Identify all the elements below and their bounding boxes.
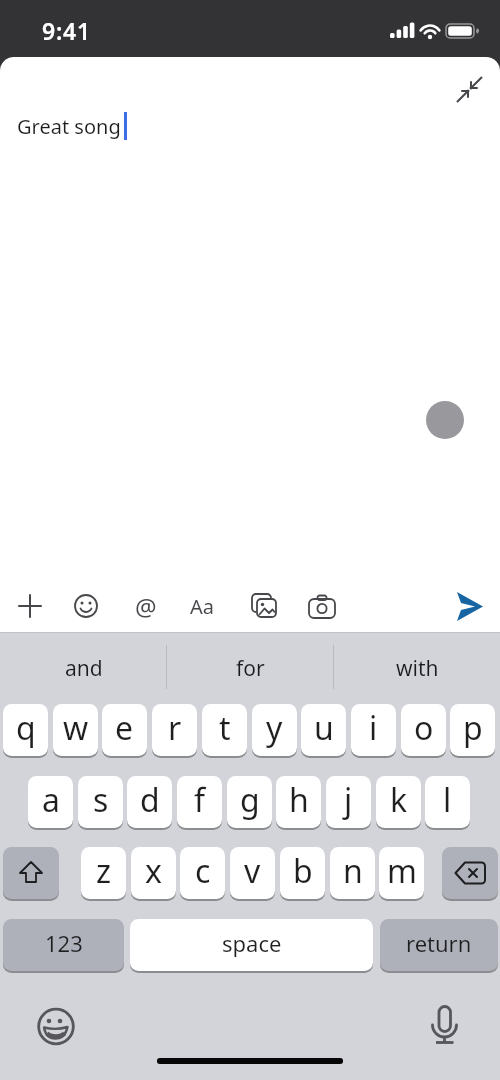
button[interactable]: and — [24, 654, 144, 680]
button[interactable]: k — [376, 776, 421, 830]
button[interactable]: a — [28, 776, 73, 830]
staticText: e — [115, 706, 134, 750]
button[interactable]: q — [3, 704, 48, 758]
staticText: u — [314, 706, 334, 750]
button[interactable] — [428, 1002, 464, 1047]
button[interactable]: l — [425, 776, 470, 830]
staticText: k — [390, 778, 408, 822]
staticText: q — [16, 706, 36, 750]
button[interactable]: e — [102, 704, 147, 758]
staticText: 123 — [45, 928, 83, 958]
button[interactable]: i — [351, 704, 396, 758]
button[interactable]: g — [227, 776, 272, 830]
staticText: with — [396, 654, 439, 680]
button[interactable] — [36, 1006, 77, 1047]
button[interactable]: c — [180, 847, 225, 901]
staticText: j — [344, 778, 353, 822]
button[interactable]: x — [131, 847, 176, 901]
button[interactable] — [249, 591, 279, 621]
staticText: a — [42, 778, 60, 822]
staticText: t — [219, 706, 231, 750]
button[interactable]: w — [53, 704, 98, 758]
button[interactable]: return — [380, 919, 498, 973]
staticText: l — [443, 778, 452, 822]
button[interactable]: d — [127, 776, 172, 830]
staticText: v — [244, 849, 261, 893]
button[interactable]: v — [230, 847, 275, 901]
button[interactable]: for — [190, 654, 310, 680]
button[interactable]: m — [379, 847, 424, 901]
staticText: x — [145, 849, 162, 893]
staticText: for — [236, 654, 265, 680]
button[interactable]: @ — [131, 590, 161, 622]
button[interactable]: n — [330, 847, 375, 901]
button[interactable] — [72, 592, 100, 620]
staticText: s — [93, 778, 109, 822]
button[interactable] — [3, 847, 59, 901]
button[interactable]: o — [401, 704, 446, 758]
staticText: m — [387, 849, 417, 893]
button[interactable]: Aa — [184, 590, 220, 622]
button[interactable]: s — [78, 776, 123, 830]
staticText: r — [168, 706, 182, 750]
staticText: c — [195, 849, 211, 893]
button[interactable] — [452, 588, 488, 624]
staticText: space — [222, 928, 282, 958]
button[interactable]: p — [450, 704, 495, 758]
staticText: and — [65, 654, 103, 680]
button[interactable] — [16, 592, 44, 620]
staticText: Aa — [190, 593, 214, 620]
staticText: h — [289, 778, 309, 822]
staticText: w — [63, 706, 89, 750]
button[interactable]: f — [177, 776, 222, 830]
button[interactable]: 123 — [3, 919, 124, 973]
staticText: z — [96, 849, 112, 893]
button[interactable] — [306, 592, 338, 620]
staticText: o — [414, 706, 434, 750]
button[interactable] — [426, 401, 464, 439]
staticText: d — [140, 778, 160, 822]
button[interactable]: z — [81, 847, 126, 901]
button[interactable]: with — [357, 654, 477, 680]
staticText: f — [194, 778, 206, 822]
button[interactable]: j — [326, 776, 371, 830]
staticText: p — [463, 706, 483, 750]
staticText: b — [293, 849, 313, 893]
staticText: i — [369, 706, 378, 750]
button[interactable]: h — [276, 776, 321, 830]
button[interactable]: t — [202, 704, 247, 758]
staticText: @ — [135, 590, 157, 622]
staticText: n — [343, 849, 363, 893]
button[interactable]: b — [280, 847, 325, 901]
staticText: y — [266, 706, 283, 750]
button[interactable]: y — [252, 704, 297, 758]
staticText: return — [406, 928, 472, 958]
button[interactable] — [442, 847, 498, 901]
staticText: 9:41 — [42, 15, 92, 46]
button[interactable] — [452, 71, 488, 107]
staticText: g — [240, 778, 260, 822]
button[interactable]: r — [152, 704, 197, 758]
staticText: Great song — [17, 113, 121, 140]
button[interactable]: space — [130, 919, 373, 973]
button[interactable]: u — [301, 704, 346, 758]
